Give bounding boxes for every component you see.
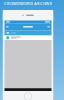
staticText: CROWDWORD ARCHIVE: [4, 1, 52, 6]
